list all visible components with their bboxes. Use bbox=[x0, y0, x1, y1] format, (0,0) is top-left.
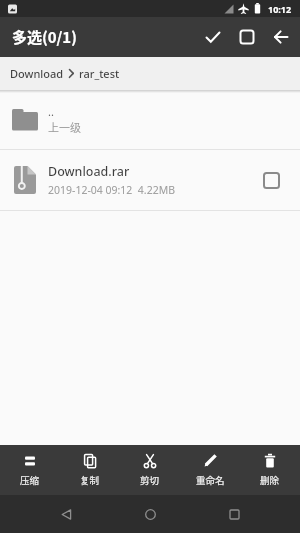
button[interactable]: 删除 bbox=[240, 445, 300, 495]
button[interactable] bbox=[204, 495, 264, 533]
button[interactable]: 剪切 bbox=[120, 445, 180, 495]
button[interactable]: 重命名 bbox=[180, 445, 240, 495]
button[interactable]: 复制 bbox=[60, 445, 120, 495]
staticText: 重命名 bbox=[196, 473, 225, 487]
staticText: 复制 bbox=[80, 473, 100, 487]
staticText: 上一级 bbox=[48, 119, 81, 135]
staticText: 10:12 bbox=[268, 3, 292, 15]
button[interactable] bbox=[120, 495, 180, 533]
button[interactable]: Download bbox=[10, 66, 64, 81]
button[interactable]: 压缩 bbox=[0, 445, 60, 495]
button[interactable] bbox=[230, 17, 264, 57]
button[interactable] bbox=[256, 165, 286, 195]
staticText: .. bbox=[48, 104, 54, 119]
staticText: 压缩 bbox=[20, 473, 40, 487]
staticText: 2019-12-04 09:12 4.22MB bbox=[48, 183, 176, 197]
button[interactable]: rar_test bbox=[79, 66, 120, 81]
button[interactable] bbox=[264, 17, 298, 57]
button[interactable]: .. bbox=[0, 90, 300, 149]
button[interactable] bbox=[36, 495, 96, 533]
staticText: 删除 bbox=[260, 473, 280, 487]
staticText: 剪切 bbox=[140, 473, 160, 487]
staticText: 多选(0/1) bbox=[12, 26, 77, 48]
button[interactable] bbox=[196, 17, 230, 57]
staticText: Download.rar bbox=[48, 163, 130, 180]
button[interactable]: Download.rar bbox=[0, 150, 300, 210]
